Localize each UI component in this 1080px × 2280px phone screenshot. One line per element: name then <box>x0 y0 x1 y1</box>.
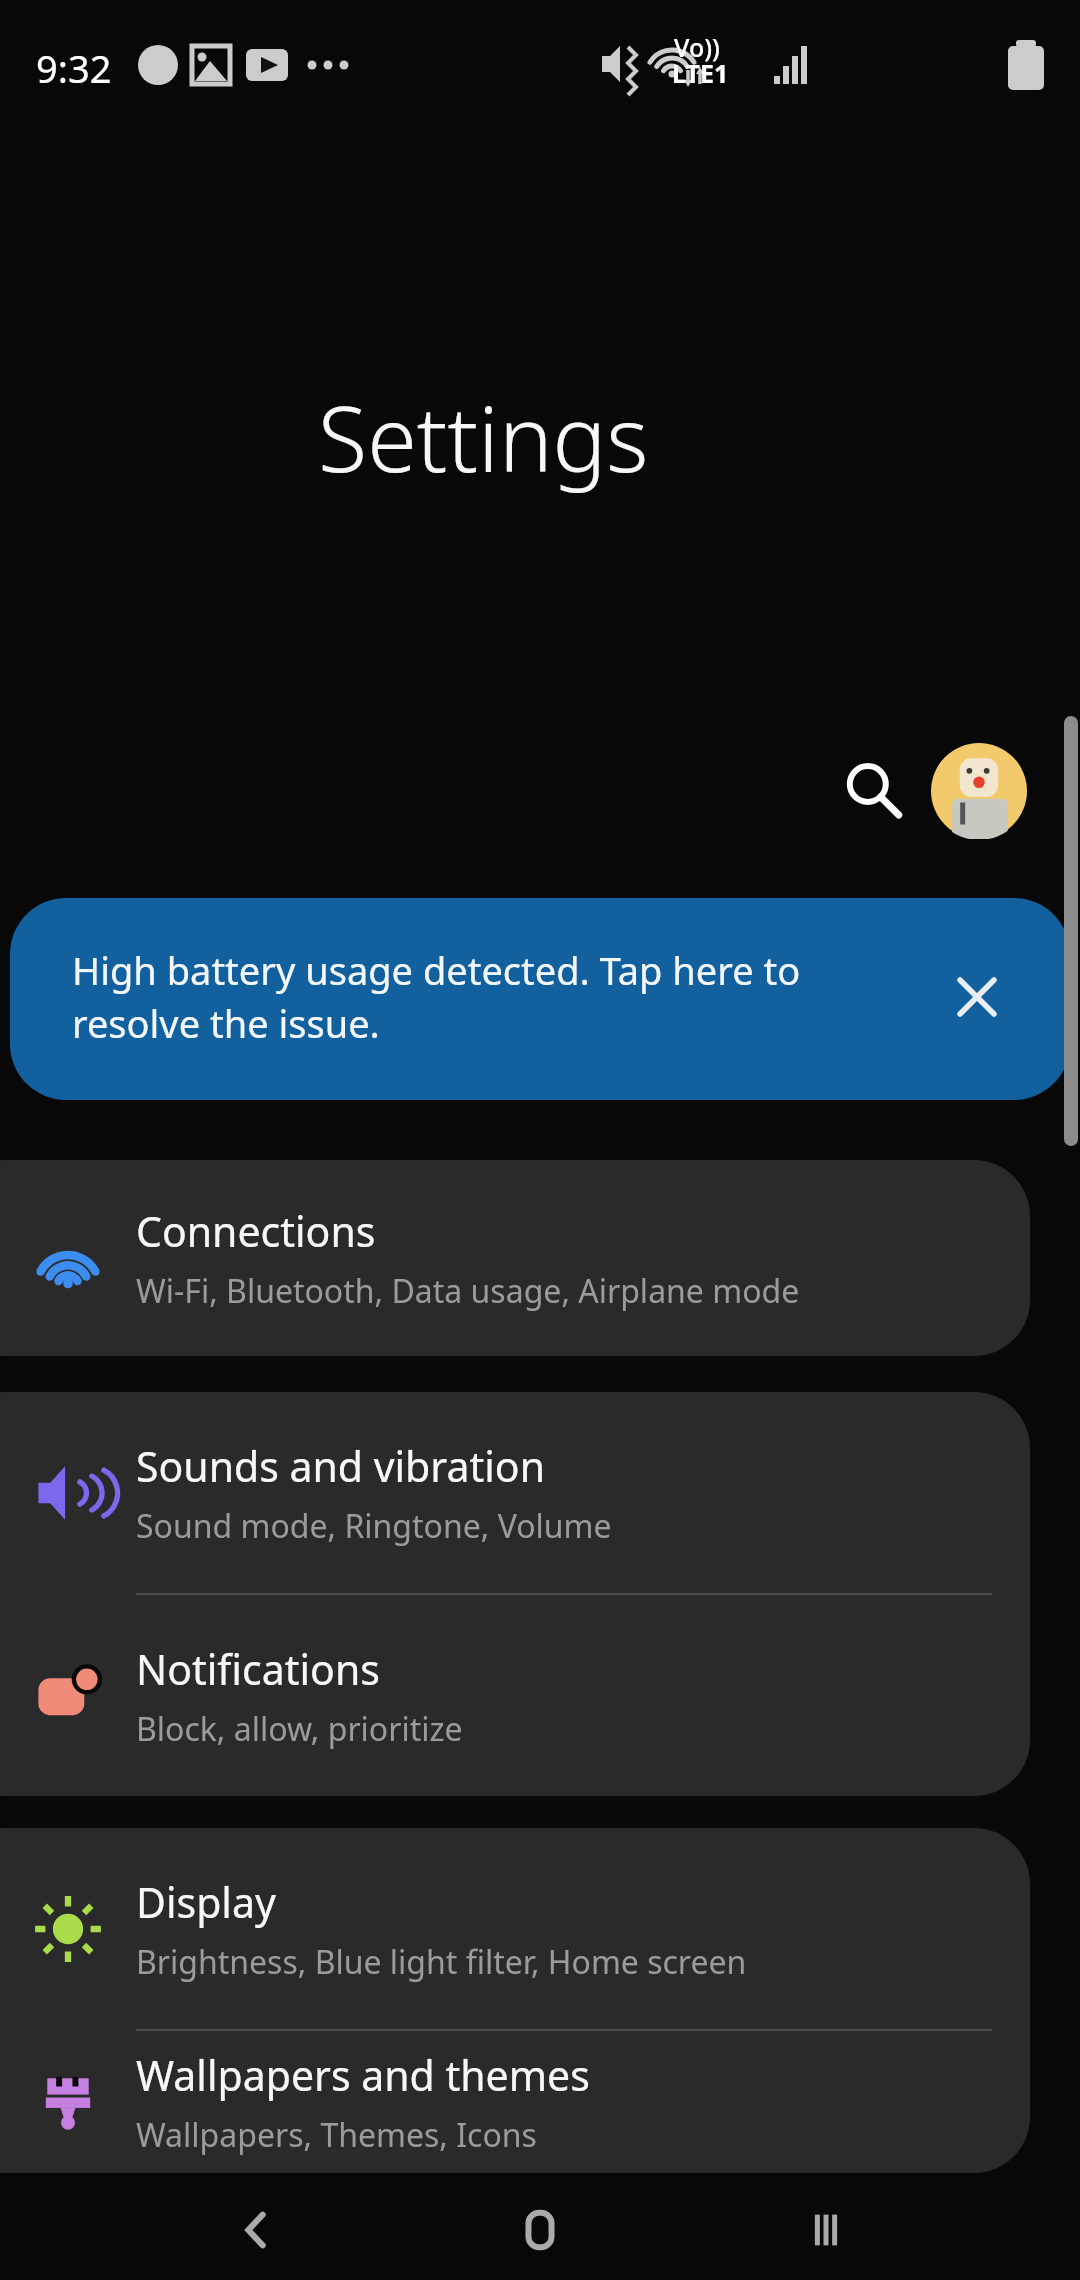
button[interactable]: Notifications <box>0 1595 1030 1796</box>
button[interactable]: Back <box>186 2180 326 2280</box>
staticText: LTE1 <box>672 56 729 90</box>
staticText: High battery usage detected. Tap here to… <box>72 944 801 1050</box>
staticText: Vo)) <box>674 30 720 64</box>
button[interactable]: Home <box>470 2180 610 2280</box>
staticText: Connections <box>136 1203 376 1259</box>
staticText: Notifications <box>136 1641 380 1697</box>
staticText: Settings <box>318 376 649 499</box>
staticText: Brightness, Blue light filter, Home scre… <box>136 1940 747 1984</box>
button[interactable]: High battery usage detected. Tap here to… <box>10 898 1070 1100</box>
button[interactable]: Wallpapers and themes <box>0 2031 1030 2173</box>
staticText: Wallpapers and themes <box>136 2047 590 2103</box>
staticText: Display <box>136 1874 276 1930</box>
staticText: Wi-Fi, Bluetooth, Data usage, Airplane m… <box>136 1269 800 1313</box>
button[interactable]: Connections <box>0 1160 1030 1356</box>
button[interactable]: Dismiss <box>928 948 1026 1046</box>
staticText: Block, allow, prioritize <box>136 1707 463 1751</box>
staticText: Wallpapers, Themes, Icons <box>136 2113 537 2157</box>
staticText: 9:32 <box>36 42 112 94</box>
staticText: Sound mode, Ringtone, Volume <box>136 1504 612 1548</box>
button[interactable]: Sounds and vibration <box>0 1392 1030 1593</box>
button[interactable]: Recents <box>756 2180 896 2280</box>
button[interactable]: Search <box>822 740 922 840</box>
staticText: Sounds and vibration <box>136 1438 545 1494</box>
button[interactable]: Display <box>0 1828 1030 2029</box>
button[interactable]: Samsung account <box>930 742 1028 840</box>
